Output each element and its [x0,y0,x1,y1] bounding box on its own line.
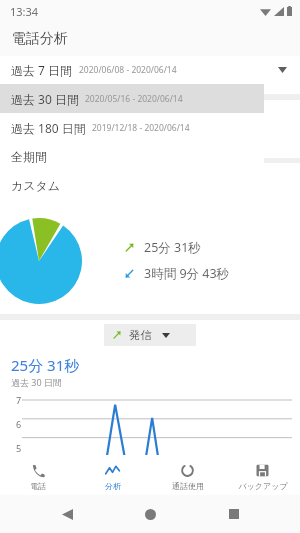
staticText: 25分 31秒 [144,239,201,256]
button[interactable]: 発信 [104,324,196,346]
staticText: 電話分析 [12,30,68,48]
staticText: 過去 7 日間 [11,62,73,78]
staticText: 発信 [129,328,152,342]
staticText: 通話使用 [172,481,204,491]
staticText: カスタム [11,178,61,193]
button[interactable]: 電話 [0,459,75,491]
button[interactable]: 分析 [75,459,150,491]
staticText: 過去 30 日間 [11,91,79,107]
staticText: 過去 180 日間 [11,120,86,136]
staticText: バックアップ [238,481,288,491]
button[interactable]: 過去 30 日間 [0,84,264,113]
button[interactable]: 通話使用 [150,459,225,491]
button[interactable]: 全期間 [0,142,264,171]
staticText: 13:34 [10,4,39,19]
button[interactable]: 戻る [50,497,84,531]
staticText: 25分 31秒 [11,355,80,375]
button[interactable]: 過去 7 日間 [0,56,264,84]
staticText: 分析 [105,481,121,491]
staticText: 過去 30 日間 [11,376,62,388]
staticText: 電話 [30,481,46,491]
staticText: 5 [16,442,22,454]
button[interactable]: カスタム [0,171,264,200]
button[interactable]: ホーム [133,497,167,531]
staticText: 全期間 [11,149,47,164]
staticText: 3時間 9分 43秒 [144,265,230,282]
button[interactable]: バックアップ [225,459,300,491]
staticText: 2019/12/18 - 2020/06/14 [92,122,190,134]
button[interactable]: 期間を選択 [264,56,300,84]
staticText: 7 [16,394,22,406]
staticText: 2020/05/16 - 2020/06/14 [85,93,183,105]
button[interactable]: 履歴 [217,497,251,531]
staticText: 6 [16,418,22,430]
button[interactable]: 過去 180 日間 [0,113,264,142]
staticText: 2020/06/08 - 2020/06/14 [79,64,177,76]
